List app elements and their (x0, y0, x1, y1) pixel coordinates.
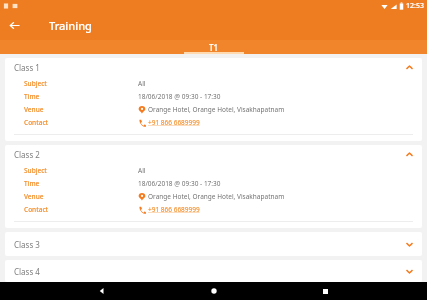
button[interactable]: Home (205, 282, 223, 300)
staticText: Contact (24, 205, 49, 214)
staticText: Time (24, 92, 40, 101)
staticText: Orange Hotel, Orange Hotel, Visakhapatna… (148, 192, 285, 201)
staticText: Subject (24, 166, 47, 175)
staticText: T1 (209, 42, 219, 53)
staticText: Class 4 (14, 266, 40, 277)
staticText: 18/06/2018 @ 09:30 - 17:30 (138, 92, 221, 101)
button[interactable]: Back (0, 11, 29, 40)
staticText: Contact (24, 118, 49, 127)
staticText: All (138, 79, 146, 88)
staticText: 12:53 (406, 1, 424, 11)
button[interactable]: Recents (316, 282, 334, 300)
staticText: +91 866 6689999 (148, 205, 200, 214)
staticText: Class 1 (14, 62, 40, 73)
staticText: Class 2 (14, 149, 40, 160)
button[interactable]: Back (93, 282, 111, 300)
other: Collapse (400, 58, 419, 77)
other: Expand (400, 262, 419, 281)
staticText: Training (49, 18, 92, 33)
button[interactable]: Class 4 (5, 260, 422, 282)
staticText: 18/06/2018 @ 09:30 - 17:30 (138, 179, 221, 188)
staticText: Venue (24, 192, 44, 201)
button[interactable]: Class 3 (5, 232, 422, 256)
staticText: Class 3 (14, 239, 40, 250)
staticText: All (138, 166, 146, 175)
other: Collapse (400, 145, 419, 164)
button[interactable]: Class 2 (5, 145, 422, 164)
staticText: Time (24, 179, 40, 188)
staticText: Orange Hotel, Orange Hotel, Visakhapatna… (148, 105, 285, 114)
button[interactable]: T1 (0, 40, 427, 54)
staticText: Venue (24, 105, 44, 114)
staticText: Subject (24, 79, 47, 88)
staticText: +91 866 6689999 (148, 118, 200, 127)
button[interactable]: Class 1 (5, 58, 422, 77)
other: Expand (400, 235, 419, 254)
